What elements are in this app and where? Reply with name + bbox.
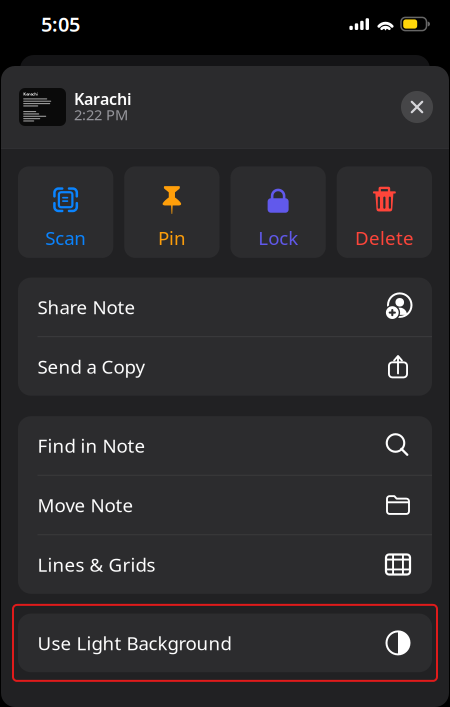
staticText: Delete (355, 225, 414, 250)
staticText: 2:22 PM (74, 105, 128, 124)
button[interactable]: Scan (18, 166, 113, 258)
button[interactable]: Find in Note (18, 416, 432, 475)
button[interactable]: Move Note (18, 476, 432, 534)
button[interactable]: Use Light Background (18, 614, 432, 672)
button[interactable]: Lock (230, 166, 326, 258)
button[interactable]: Share Note (18, 278, 432, 336)
staticText: Lock (258, 225, 298, 250)
staticText: Karachi (74, 88, 132, 109)
staticText: Pin (158, 225, 186, 250)
staticText: Find in Note (37, 433, 145, 458)
staticText: Use Light Background (37, 630, 231, 655)
staticText: Move Note (37, 493, 133, 517)
button[interactable]: Delete (337, 166, 432, 258)
staticText: Lines & Grids (37, 552, 155, 577)
button[interactable]: Send a Copy (18, 337, 432, 396)
staticText: Scan (45, 225, 86, 250)
staticText: Karachi (23, 91, 38, 96)
button[interactable]: Close (395, 85, 439, 129)
staticText: 5:05 (41, 11, 80, 37)
staticText: Send a Copy (37, 354, 145, 379)
staticText: Share Note (37, 294, 135, 319)
button[interactable]: Pin (124, 166, 219, 258)
button[interactable]: Lines & Grids (18, 535, 432, 594)
